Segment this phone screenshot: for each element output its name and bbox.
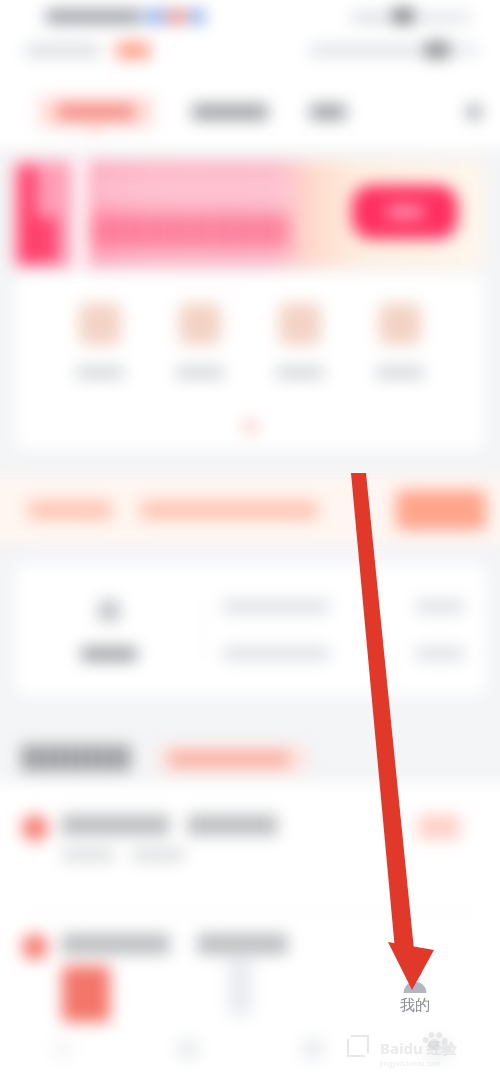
button[interactable] bbox=[18, 745, 130, 771]
staticText: jingyan.baidu.com bbox=[380, 1059, 441, 1069]
button[interactable] bbox=[376, 303, 424, 378]
button[interactable] bbox=[0, 477, 500, 543]
staticText: 我的 bbox=[400, 996, 430, 1015]
button[interactable] bbox=[0, 912, 500, 1031]
button[interactable] bbox=[192, 104, 268, 120]
button[interactable]: Messages bbox=[250, 1031, 375, 1083]
staticText: Baidu 经验 bbox=[380, 1038, 457, 1058]
button[interactable] bbox=[0, 783, 500, 911]
button[interactable] bbox=[16, 565, 202, 695]
button[interactable] bbox=[276, 303, 324, 378]
button[interactable] bbox=[352, 185, 458, 239]
button[interactable] bbox=[14, 161, 486, 267]
button[interactable] bbox=[38, 96, 154, 128]
button[interactable] bbox=[176, 303, 224, 378]
button[interactable] bbox=[158, 745, 308, 773]
button[interactable]: Mine bbox=[375, 1031, 500, 1083]
button[interactable] bbox=[310, 104, 346, 120]
button[interactable]: More bbox=[466, 104, 482, 120]
button[interactable] bbox=[76, 303, 124, 378]
